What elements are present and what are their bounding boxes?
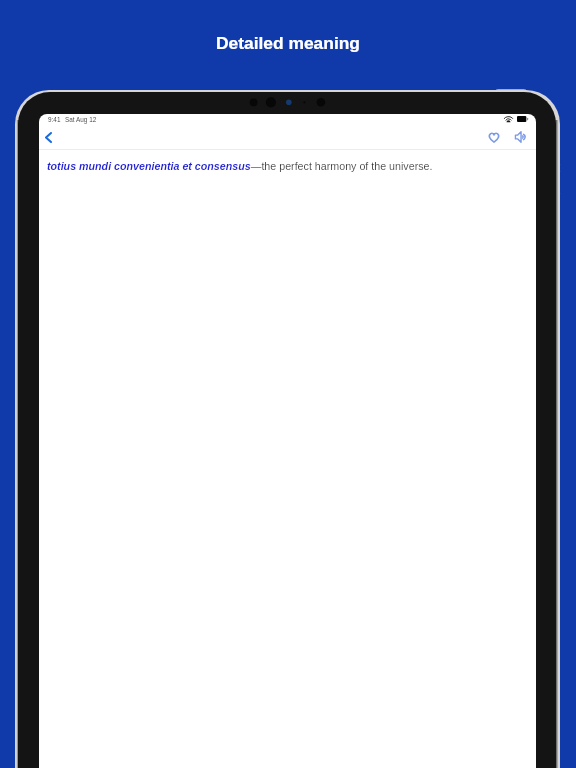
button[interactable]: Back: [39, 127, 58, 147]
button[interactable]: Favorite: [485, 128, 503, 146]
staticText: Detailed meaning: [216, 33, 360, 52]
staticText: totius mundi convenientia et consensus—t…: [47, 160, 433, 172]
button[interactable]: totius mundi convenientia et consensus—t…: [39, 150, 536, 172]
button[interactable]: Play audio: [511, 128, 529, 146]
staticText: Sat Aug 12: [65, 116, 97, 123]
staticText: 9:41: [48, 116, 61, 123]
